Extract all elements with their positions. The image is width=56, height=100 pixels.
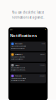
staticText: Notifications (10, 33, 37, 38)
staticText: notifications at a glance. (11, 16, 44, 19)
staticText: Alex sent you a photo in (11, 45, 26, 47)
staticText: Pick up dry cleaning (11, 56, 25, 58)
staticText: Reminders (15, 54, 23, 55)
staticText: from Daily Tech Brief. (11, 80, 24, 81)
button[interactable]: Settings (10, 63, 46, 72)
staticText: Messages (15, 43, 23, 45)
staticText: 1h ago (40, 64, 45, 66)
staticText: New episode available (11, 77, 26, 79)
staticText: before 6 PM today. (11, 58, 23, 60)
staticText: Settings (15, 64, 20, 66)
button[interactable]: Reminders (10, 52, 46, 62)
staticText: the weekend album. (11, 48, 24, 49)
staticText: install on your iPhone. (11, 69, 25, 71)
button[interactable]: Messages (10, 42, 46, 51)
staticText: 9:41 (10, 29, 13, 31)
button[interactable]: Podcasts (10, 74, 46, 83)
staticText: You can check the latest (12, 11, 44, 14)
staticText: iOS update is ready to (11, 67, 25, 69)
staticText: 2h ago (40, 75, 45, 77)
staticText: now (42, 43, 45, 45)
staticText: ıll ⌁ (45, 29, 46, 31)
staticText: Podcasts (15, 75, 22, 77)
staticText: 5m ago (40, 54, 45, 55)
